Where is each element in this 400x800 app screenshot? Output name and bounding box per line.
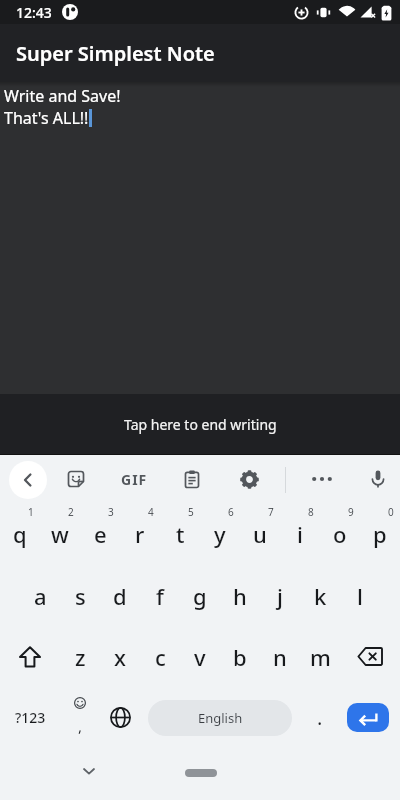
staticText: m <box>310 642 331 672</box>
button[interactable]: a <box>20 565 60 626</box>
button[interactable] <box>185 769 217 777</box>
button[interactable]: . <box>300 687 340 748</box>
button[interactable]: x <box>100 626 140 687</box>
staticText: 5 <box>188 505 194 519</box>
staticText: s <box>75 581 86 611</box>
staticText: q <box>13 519 27 549</box>
staticText: 7 <box>268 505 274 519</box>
button[interactable]: j <box>260 565 300 626</box>
button[interactable]: f <box>140 565 180 626</box>
staticText: t <box>176 519 185 549</box>
staticText: 2 <box>68 505 74 519</box>
staticText: n <box>273 642 287 672</box>
staticText: 12:43 <box>16 3 52 22</box>
staticText: i <box>297 519 303 549</box>
staticText: 0 <box>388 505 394 519</box>
button[interactable]: ?123 <box>0 687 60 748</box>
button[interactable] <box>0 626 60 687</box>
staticText: Tap here to end writing <box>124 415 277 434</box>
staticText: That's ALL!! <box>4 107 89 129</box>
button[interactable] <box>229 459 269 499</box>
staticText: z <box>75 642 86 672</box>
button[interactable]: 2 <box>40 504 80 565</box>
staticText: 3 <box>108 505 114 519</box>
button[interactable] <box>9 461 47 499</box>
staticText: c <box>155 642 166 672</box>
staticText: h <box>233 581 247 611</box>
button[interactable]: English <box>140 687 300 748</box>
staticText: . <box>317 704 323 731</box>
staticText: GIF <box>121 470 148 489</box>
button[interactable]: 4 <box>120 504 160 565</box>
staticText: w <box>51 519 69 549</box>
staticText: 6 <box>228 505 234 519</box>
staticText: u <box>253 519 267 549</box>
button[interactable]: 7 <box>240 504 280 565</box>
staticText: y <box>214 519 226 549</box>
button[interactable]: b <box>220 626 260 687</box>
staticText: 4 <box>148 505 154 519</box>
staticText: 9 <box>348 505 354 519</box>
button[interactable]: 0 <box>360 504 400 565</box>
button[interactable] <box>73 755 105 787</box>
staticText: , <box>78 716 83 736</box>
button[interactable]: m <box>300 626 340 687</box>
staticText: l <box>357 581 363 611</box>
button[interactable]: s <box>60 565 100 626</box>
button[interactable]: GIF <box>114 459 154 499</box>
staticText: a <box>34 581 47 611</box>
staticText: p <box>373 519 387 549</box>
staticText: g <box>193 581 207 611</box>
button[interactable] <box>100 687 140 748</box>
staticText: ?123 <box>15 708 46 727</box>
button[interactable]: g <box>180 565 220 626</box>
staticText: e <box>94 519 107 549</box>
button[interactable]: 3 <box>80 504 120 565</box>
button[interactable]: k <box>300 565 340 626</box>
button[interactable] <box>302 459 342 499</box>
button[interactable]: Tap here to end writing <box>0 394 400 454</box>
staticText: 8 <box>308 505 314 519</box>
staticText: k <box>314 581 327 611</box>
button[interactable]: d <box>100 565 140 626</box>
button[interactable] <box>340 687 400 748</box>
staticText: r <box>135 519 145 549</box>
staticText: o <box>333 519 347 549</box>
button[interactable] <box>340 626 400 687</box>
button[interactable] <box>56 459 96 499</box>
staticText: f <box>156 581 164 611</box>
staticText: d <box>113 581 127 611</box>
button[interactable]: v <box>180 626 220 687</box>
staticText: Super Simplest Note <box>16 40 215 67</box>
button[interactable] <box>172 459 212 499</box>
button[interactable]: 9 <box>320 504 360 565</box>
button[interactable]: c <box>140 626 180 687</box>
button[interactable]: 1 <box>0 504 40 565</box>
button[interactable]: h <box>220 565 260 626</box>
button[interactable]: , <box>60 687 100 748</box>
staticText: English <box>198 709 243 727</box>
staticText: j <box>277 581 283 611</box>
staticText: v <box>194 642 206 672</box>
button[interactable]: 6 <box>200 504 240 565</box>
button[interactable]: 5 <box>160 504 200 565</box>
button[interactable] <box>358 459 398 499</box>
button[interactable]: l <box>340 565 380 626</box>
staticText: 1 <box>28 505 34 519</box>
button[interactable]: 8 <box>280 504 320 565</box>
staticText: b <box>233 642 247 672</box>
staticText: x <box>114 642 126 672</box>
button[interactable]: z <box>60 626 100 687</box>
button[interactable]: n <box>260 626 300 687</box>
staticText: Write and Save! <box>4 85 121 107</box>
